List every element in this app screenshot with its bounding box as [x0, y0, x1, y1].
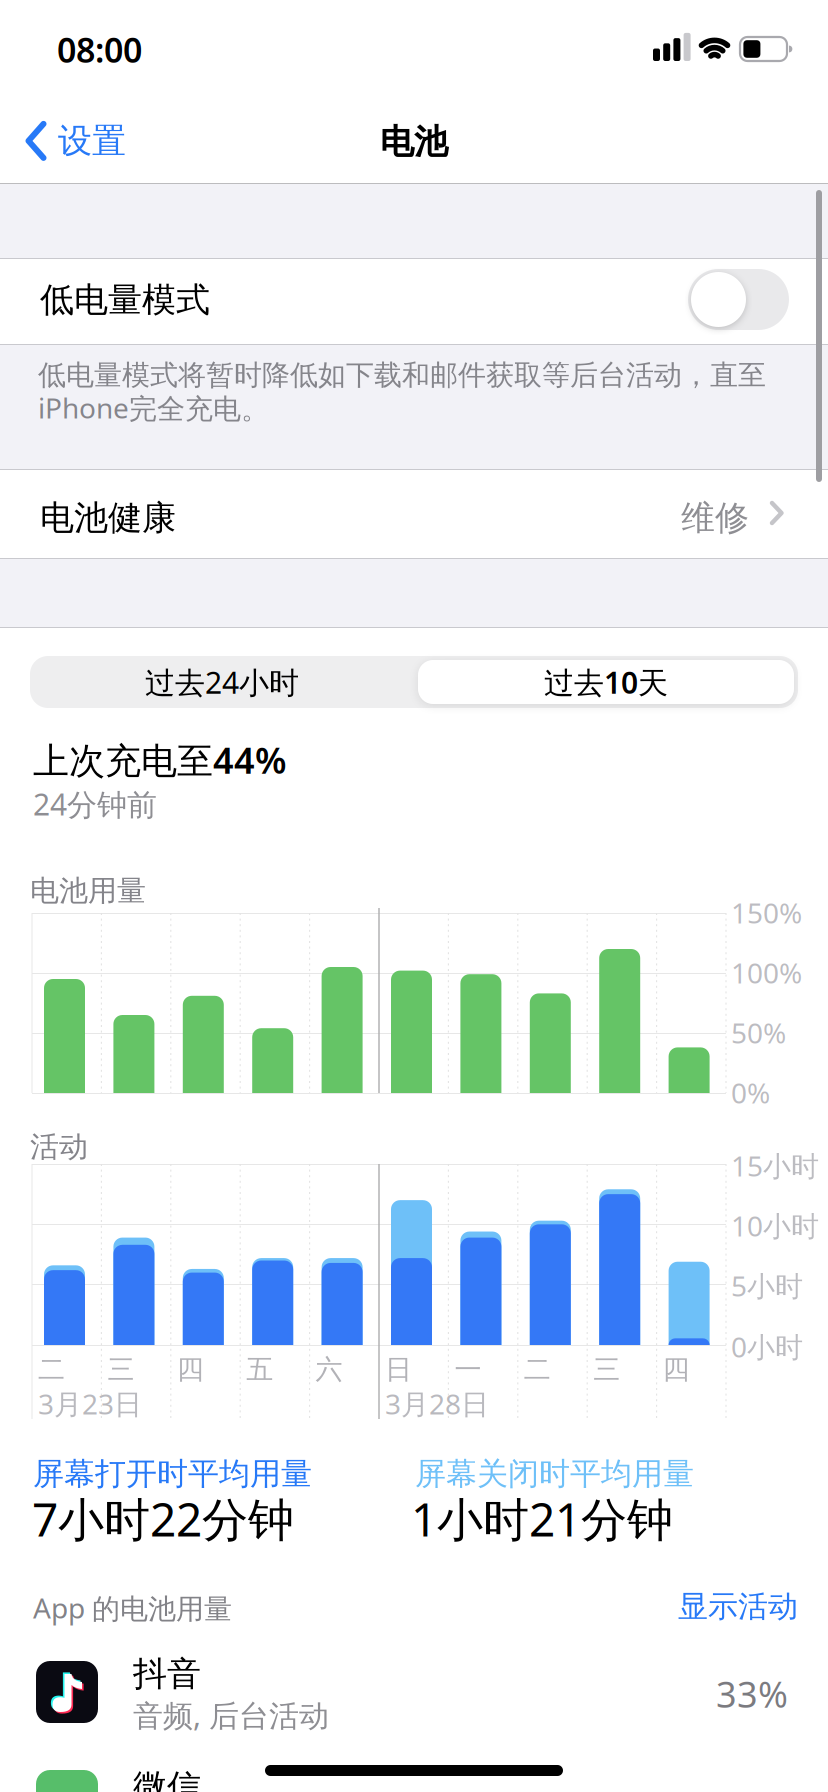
staticText: 150%	[731, 894, 802, 931]
staticText: 过去10天	[544, 662, 668, 702]
staticText: 六	[316, 1353, 343, 1386]
staticText: iPhone完全充电。	[38, 389, 269, 426]
staticText: 日	[385, 1353, 412, 1386]
staticText: 二	[524, 1353, 551, 1386]
staticText: 50%	[731, 1014, 786, 1051]
staticText: 上次充电至44%	[33, 736, 287, 784]
staticText: 三	[107, 1353, 134, 1386]
button[interactable]: 设置	[27, 120, 126, 162]
button[interactable]: 微信	[0, 1754, 828, 1792]
staticText: 3月28日	[385, 1385, 489, 1422]
staticText: 四	[177, 1353, 204, 1386]
staticText: 15小时	[731, 1147, 819, 1184]
staticText: 低电量模式	[40, 279, 210, 321]
staticText: 0小时	[731, 1328, 803, 1365]
button[interactable]: 过去24小时	[30, 656, 414, 708]
staticText: 100%	[731, 954, 802, 991]
button[interactable]: 抖音	[0, 1637, 828, 1792]
staticText: 屏幕关闭时平均用量	[415, 1455, 694, 1493]
staticText: 抖音	[133, 1653, 201, 1695]
staticText: 1小时21分钟	[411, 1488, 673, 1549]
staticText: 活动	[30, 1129, 88, 1165]
staticText: 微信	[133, 1766, 201, 1792]
button[interactable]: 显示活动	[598, 1588, 798, 1625]
staticText: 电池	[380, 121, 448, 163]
staticText: 0%	[731, 1074, 770, 1111]
button[interactable]: 电池健康	[0, 470, 828, 558]
staticText: 10小时	[731, 1207, 819, 1244]
staticText: 7小时22分钟	[32, 1488, 294, 1549]
staticText: 显示活动	[678, 1588, 798, 1625]
button[interactable]: 低电量模式	[688, 269, 789, 330]
staticText: 3月23日	[38, 1385, 142, 1422]
button[interactable]: 过去10天	[418, 660, 794, 704]
staticText: 33%	[716, 1670, 788, 1718]
staticText: 08:00	[57, 27, 142, 72]
staticText: 电池用量	[30, 873, 146, 909]
staticText: 过去24小时	[145, 662, 299, 702]
staticText: 一	[454, 1353, 481, 1386]
staticText: 三	[593, 1353, 620, 1386]
staticText: 五	[246, 1353, 273, 1386]
staticText: 屏幕打开时平均用量	[33, 1455, 312, 1493]
staticText: 电池健康	[40, 497, 176, 539]
staticText: 音频, 后台活动	[133, 1695, 329, 1735]
staticText: 四	[663, 1353, 690, 1386]
staticText: 低电量模式将暂时降低如下载和邮件获取等后台活动，直至	[38, 358, 766, 392]
staticText: 二	[38, 1353, 65, 1386]
staticText: 维修	[681, 497, 749, 539]
staticText: 5小时	[731, 1267, 803, 1304]
staticText: 24分钟前	[33, 784, 157, 824]
staticText: App 的电池用量	[33, 1589, 232, 1626]
staticText: 设置	[58, 120, 126, 162]
